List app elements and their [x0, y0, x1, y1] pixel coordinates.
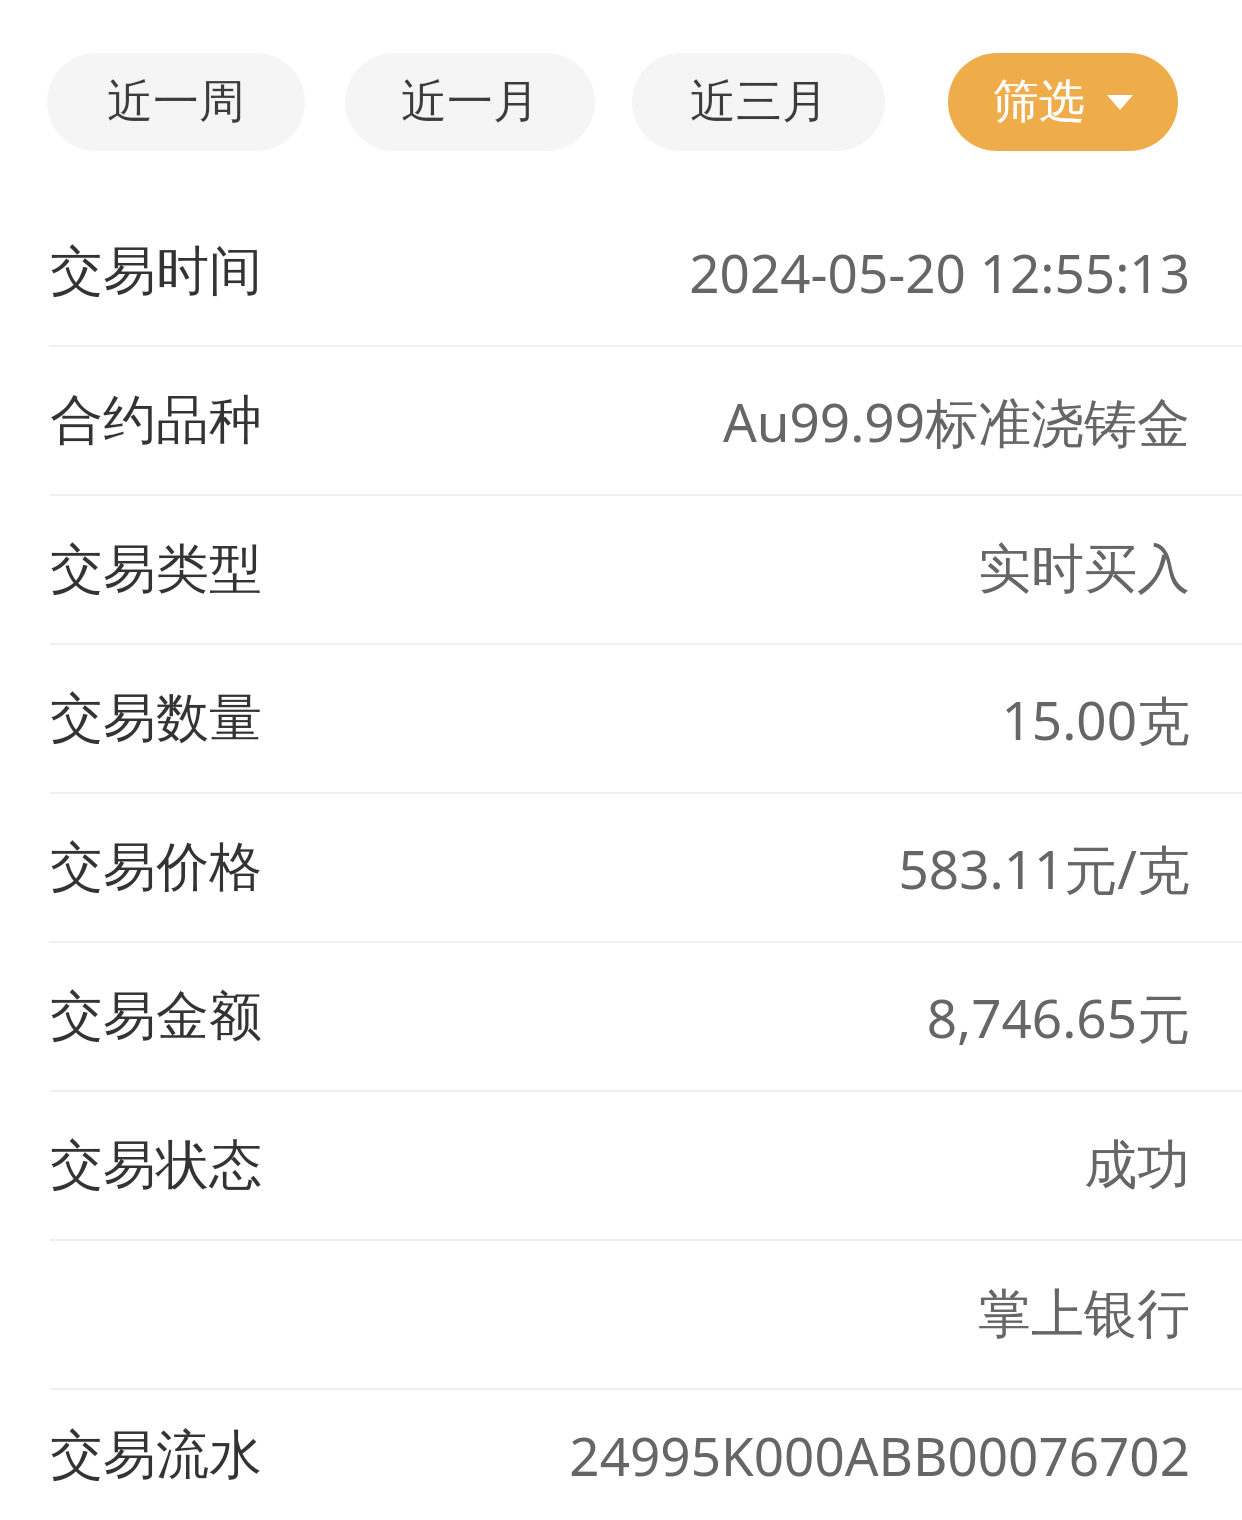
- staticText: 实时买入: [978, 536, 1190, 603]
- button[interactable]: 交易时间: [0, 198, 1242, 345]
- staticText: 8,746.65元: [926, 981, 1190, 1053]
- staticText: 交易价格: [50, 834, 262, 901]
- staticText: 交易数量: [50, 685, 262, 752]
- staticText: 交易金额: [50, 983, 262, 1050]
- staticText: 成功: [1084, 1132, 1190, 1199]
- staticText: 近一周: [107, 73, 245, 131]
- button[interactable]: 近三月: [632, 53, 885, 151]
- button[interactable]: 筛选: [948, 53, 1178, 151]
- button[interactable]: 交易金额: [0, 943, 1242, 1090]
- button[interactable]: 近一月: [345, 53, 595, 151]
- staticText: 24995K000ABB00076702: [569, 1419, 1190, 1491]
- staticText: 交易流水: [50, 1422, 262, 1489]
- staticText: 近三月: [690, 73, 828, 131]
- staticText: 交易类型: [50, 536, 262, 603]
- button[interactable]: 掌上银行: [0, 1241, 1242, 1388]
- staticText: 2024-05-20 12:55:13: [689, 236, 1190, 308]
- staticText: 筛选: [993, 73, 1085, 131]
- button[interactable]: 交易流水: [0, 1390, 1242, 1520]
- other: Open filter options: [1107, 95, 1133, 110]
- staticText: 掌上银行: [978, 1281, 1190, 1348]
- button[interactable]: 交易类型: [0, 496, 1242, 643]
- staticText: 交易时间: [50, 238, 262, 305]
- staticText: 583.11元/克: [898, 832, 1190, 904]
- button[interactable]: 交易状态: [0, 1092, 1242, 1239]
- button[interactable]: 交易价格: [0, 794, 1242, 941]
- button[interactable]: 交易数量: [0, 645, 1242, 792]
- staticText: 近一月: [401, 73, 539, 131]
- button[interactable]: 合约品种: [0, 347, 1242, 494]
- staticText: 15.00克: [1001, 683, 1190, 755]
- staticText: 交易状态: [50, 1132, 262, 1199]
- staticText: 合约品种: [50, 387, 262, 454]
- button[interactable]: 近一周: [47, 53, 305, 151]
- staticText: Au99.99标准浇铸金: [722, 385, 1190, 457]
